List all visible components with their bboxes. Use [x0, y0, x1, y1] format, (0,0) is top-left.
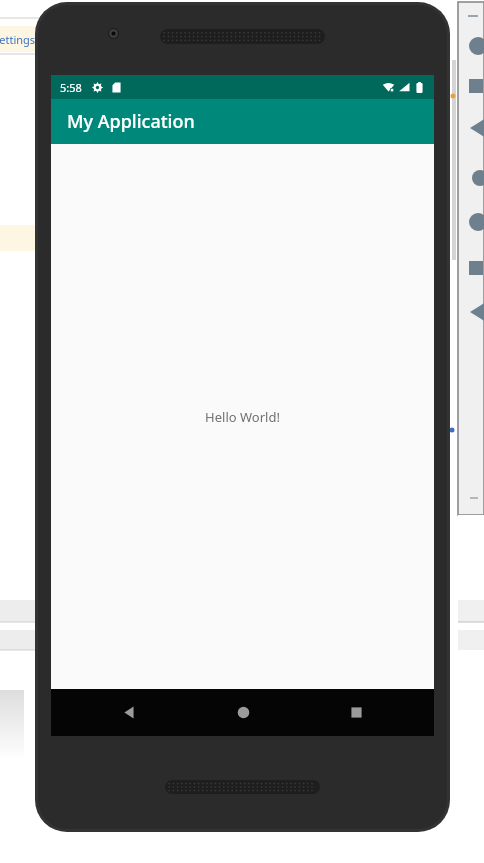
staticText: Hello World!: [205, 408, 280, 426]
button[interactable]: Back: [94, 689, 164, 736]
button[interactable]: Home: [208, 689, 278, 736]
staticText: 5:58: [60, 80, 82, 95]
button[interactable]: My Application: [51, 99, 434, 144]
staticText: My Application: [67, 109, 195, 134]
staticText: settings: [0, 32, 36, 47]
button[interactable]: Recent apps: [321, 689, 391, 736]
